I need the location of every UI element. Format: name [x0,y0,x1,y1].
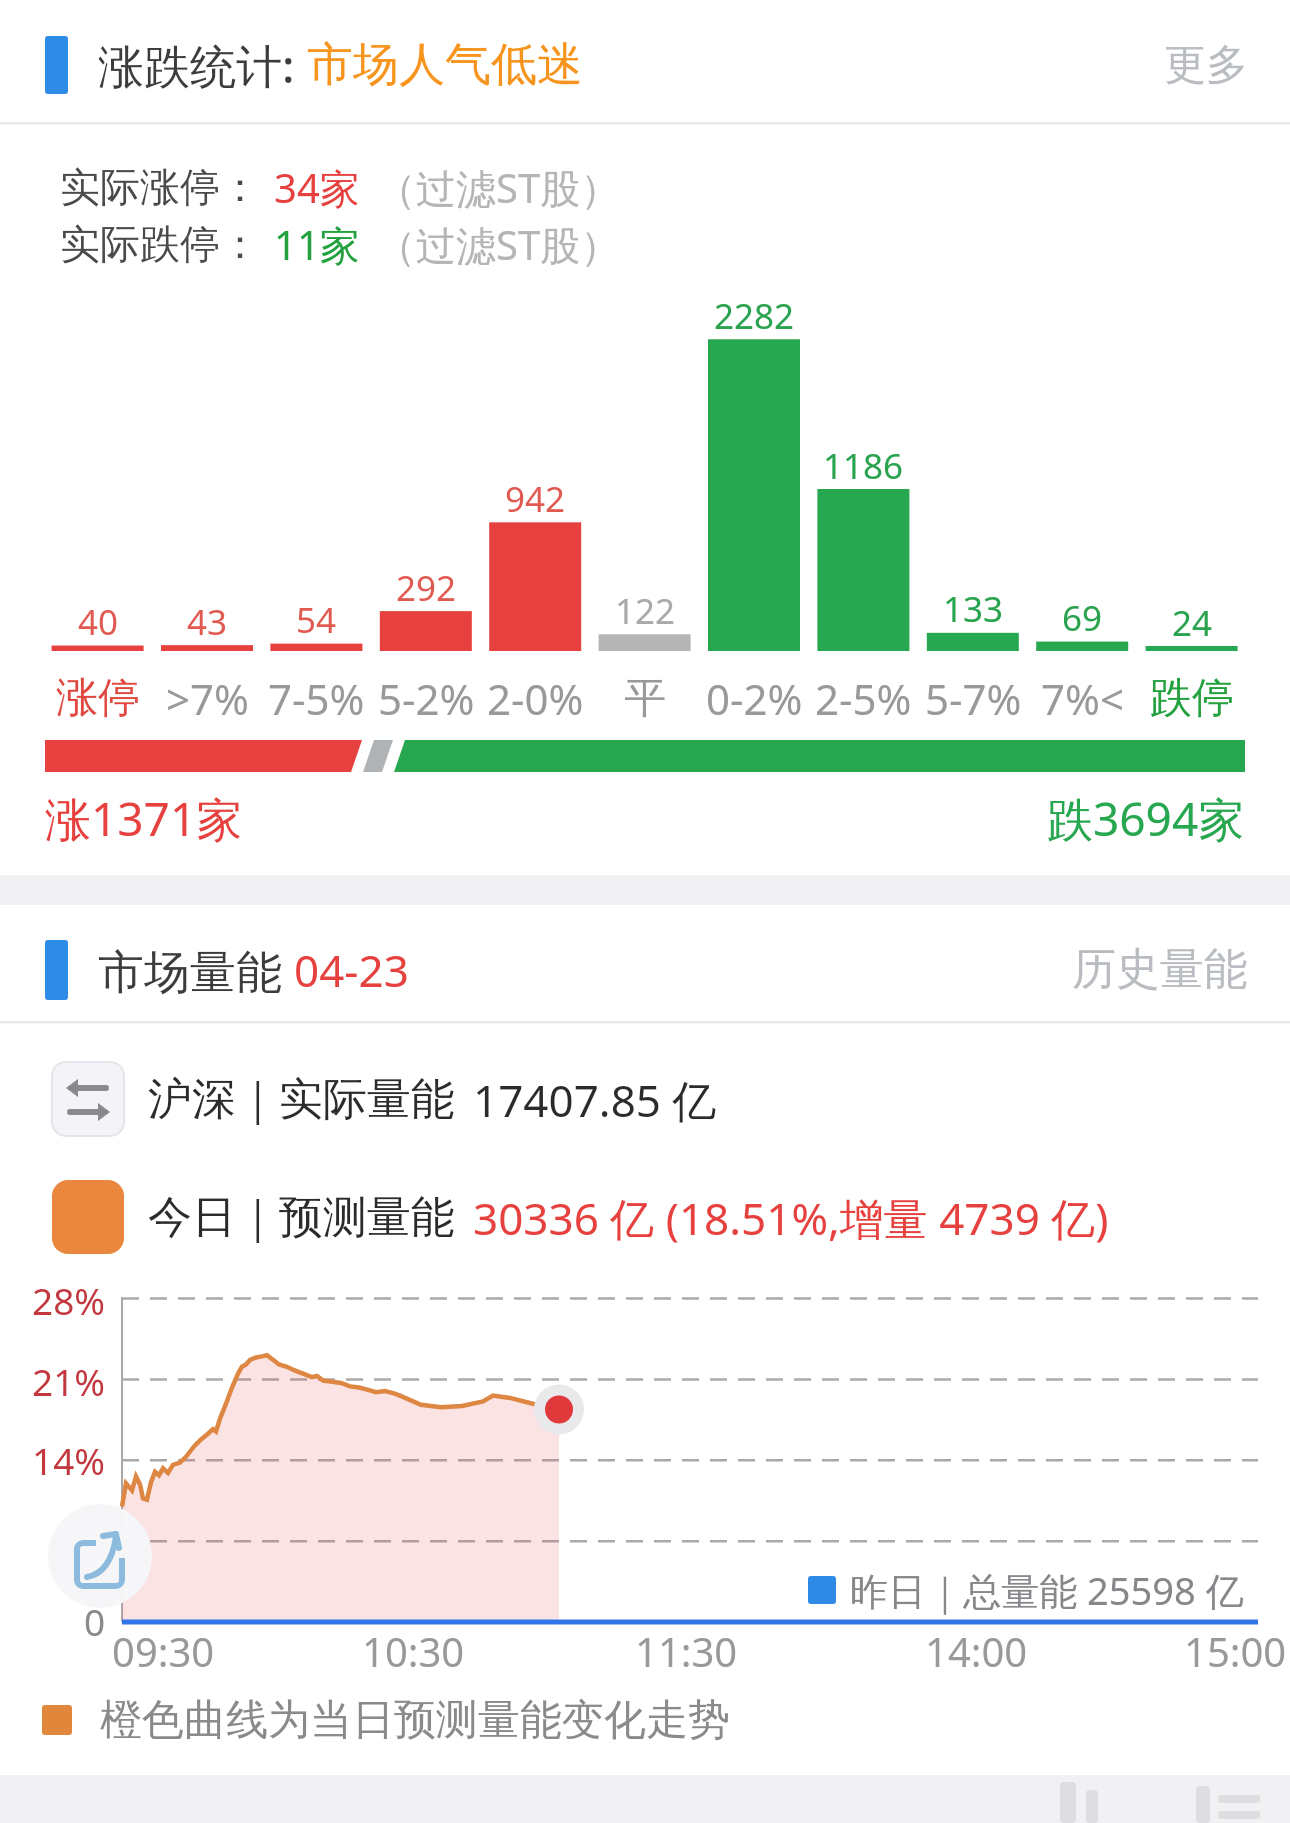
staticText: 跌3694家 [1047,787,1245,850]
staticText: 2282 [714,292,795,340]
staticText: （过滤ST股） [376,217,621,272]
staticText: 24 [1172,599,1213,647]
button[interactable] [48,1504,152,1608]
staticText: >7% [166,670,249,727]
staticText: 昨日｜总量能 25598 亿 [850,1564,1244,1616]
staticText: 跌停 [1150,672,1234,725]
staticText: 沪深｜实际量能 [148,1072,456,1127]
button[interactable]: 更多 [1164,39,1248,92]
staticText: 14% [32,1435,106,1485]
staticText: 0-2% [706,670,803,727]
staticText: 11:30 [635,1624,738,1678]
staticText: 21% [32,1356,106,1406]
staticText: 1186 [823,442,904,490]
staticText: 5-2% [378,670,475,727]
staticText: 133 [943,585,1004,633]
staticText: 涨1371家 [45,787,243,850]
staticText: 28% [32,1275,106,1325]
staticText: 292 [396,564,457,612]
staticText: 30336 亿 (18.51%,增量 4739 亿) [473,1188,1109,1248]
staticText: 43 [187,598,228,646]
staticText: 历史量能 [1072,942,1248,997]
staticText: 7%< [1041,670,1124,727]
staticText: 40 [78,598,119,646]
button[interactable]: 沪深｜实际量能 [148,1072,456,1127]
staticText: 市场人气低迷 [307,36,583,94]
staticText: 04-23 [294,940,409,1000]
staticText: 市场量能 [98,939,294,1001]
staticText: 942 [505,475,566,523]
staticText: 69 [1062,594,1103,642]
staticText: 2-5% [815,670,912,727]
staticText: 7-5% [268,670,365,727]
staticText: 122 [615,587,676,635]
staticText: 14:00 [925,1624,1028,1678]
staticText: 涨跌统计: [98,34,307,96]
staticText: 10:30 [362,1624,465,1678]
staticText: 15:00 [1184,1624,1287,1678]
staticText: 2-0% [487,670,584,727]
staticText: 09:30 [112,1624,215,1678]
staticText: 平 [624,672,666,725]
staticText: 34家 [274,160,360,215]
staticText: （过滤ST股） [376,160,621,215]
staticText: 更多 [1164,39,1248,92]
staticText: 5-7% [925,670,1022,727]
staticText: 实际涨停： [60,162,260,212]
staticText: 涨停 [56,672,140,725]
staticText: 今日｜预测量能 [148,1190,456,1245]
staticText: 17407.85 亿 [473,1070,717,1130]
staticText: 0 [84,1596,106,1646]
staticText: 实际跌停： [60,219,260,269]
staticText: 54 [296,596,337,644]
staticText: 橙色曲线为当日预测量能变化走势 [100,1694,730,1747]
staticText: 11家 [274,217,360,272]
button[interactable]: 历史量能 [1072,942,1248,997]
